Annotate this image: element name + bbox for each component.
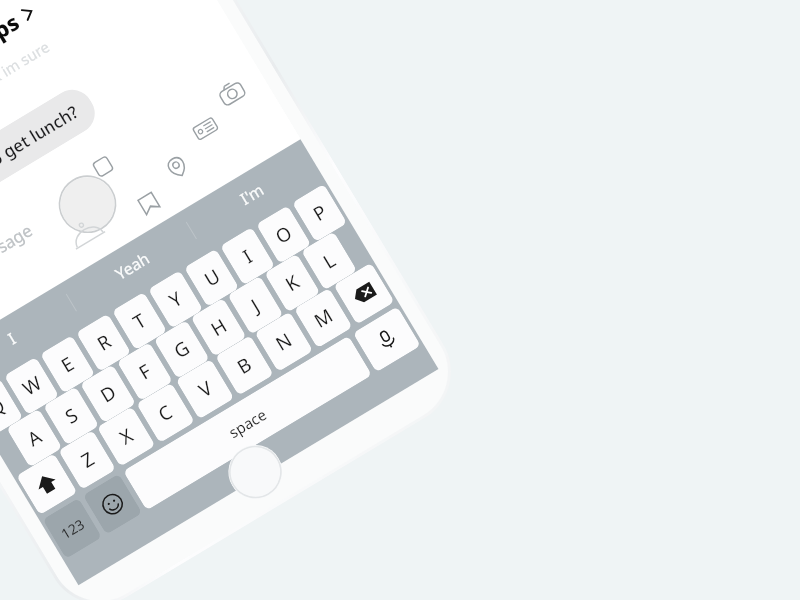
button[interactable]: O xyxy=(256,205,311,264)
staticText: V xyxy=(194,375,217,403)
staticText: O xyxy=(270,219,297,249)
button[interactable]: R xyxy=(76,313,131,372)
staticText: Q xyxy=(0,392,10,422)
staticText: J xyxy=(246,292,265,318)
button[interactable]: L xyxy=(301,231,357,290)
button[interactable]: S xyxy=(43,386,99,445)
staticText: I xyxy=(3,327,20,349)
button[interactable]: M xyxy=(294,288,353,348)
staticText: Yeah xyxy=(111,247,154,285)
button[interactable]: Emoji xyxy=(83,474,142,535)
button[interactable]: Location xyxy=(160,150,193,183)
button[interactable]: F xyxy=(117,342,173,401)
button[interactable]: X xyxy=(97,406,155,467)
staticText: Z xyxy=(76,446,99,474)
button[interactable]: Shift xyxy=(16,453,78,515)
button[interactable]: G xyxy=(154,320,210,379)
button[interactable]: T xyxy=(112,292,167,350)
button[interactable]: D xyxy=(80,364,136,423)
button[interactable]: K xyxy=(264,253,320,312)
staticText: G xyxy=(169,335,194,364)
button[interactable]: E xyxy=(40,335,95,394)
button[interactable]: Camera xyxy=(214,75,250,111)
staticText: Y xyxy=(164,285,187,313)
button[interactable]: Do you want to get lunch? xyxy=(0,82,102,247)
staticText: M xyxy=(309,302,338,334)
button[interactable]: Z xyxy=(58,430,116,490)
staticText: K xyxy=(280,269,304,297)
staticText: F xyxy=(134,358,156,385)
button[interactable]: U xyxy=(184,249,239,307)
staticText: R xyxy=(92,328,116,357)
button[interactable]: Delete xyxy=(333,262,395,325)
staticText: A xyxy=(22,423,47,452)
button[interactable]: Contact card xyxy=(189,112,222,145)
button[interactable]: Y xyxy=(148,270,203,329)
button[interactable]: Home xyxy=(218,435,292,509)
button[interactable]: space xyxy=(123,336,372,510)
staticText: U xyxy=(199,263,225,292)
button[interactable]: B xyxy=(215,335,274,396)
button[interactable]: Q xyxy=(0,378,23,436)
button[interactable]: C xyxy=(136,382,195,443)
button[interactable]: I'm xyxy=(180,139,323,249)
button[interactable]: I xyxy=(220,227,275,285)
staticText: D xyxy=(95,379,121,408)
button[interactable]: P xyxy=(292,184,347,242)
staticText: so i'll look when hes back im sure xyxy=(0,36,53,174)
button[interactable]: Record xyxy=(46,163,129,245)
staticText: W xyxy=(18,370,46,401)
staticText: 123 xyxy=(57,514,88,543)
button[interactable]: J xyxy=(227,276,284,335)
staticText: Write message xyxy=(0,218,37,299)
button[interactable]: H xyxy=(190,298,247,357)
button[interactable]: I xyxy=(0,283,83,393)
button[interactable]: V xyxy=(176,359,234,419)
staticText: E xyxy=(56,350,79,378)
staticText: Do you want to get lunch? xyxy=(0,100,82,229)
staticText: N xyxy=(271,327,297,357)
staticText: B xyxy=(232,351,257,380)
staticText: C xyxy=(153,398,178,427)
button[interactable]: Numbers xyxy=(42,498,102,559)
staticText: space xyxy=(225,404,270,442)
staticText: P xyxy=(308,198,332,227)
button[interactable]: Dictation xyxy=(353,306,421,372)
button[interactable]: 3drops xyxy=(0,0,184,162)
button[interactable]: Bookmark xyxy=(134,188,164,219)
staticText: S xyxy=(60,402,83,430)
button[interactable]: W xyxy=(4,357,59,415)
staticText: T xyxy=(128,307,151,335)
button[interactable]: A xyxy=(6,408,62,467)
staticText: 3drops xyxy=(0,6,25,71)
staticText: H xyxy=(206,312,232,342)
staticText: I'm xyxy=(236,179,268,210)
button[interactable]: Yeah xyxy=(60,211,203,321)
staticText: X xyxy=(115,422,138,450)
staticText: L xyxy=(318,247,340,274)
staticText: I xyxy=(238,243,257,269)
button[interactable]: N xyxy=(254,311,313,372)
